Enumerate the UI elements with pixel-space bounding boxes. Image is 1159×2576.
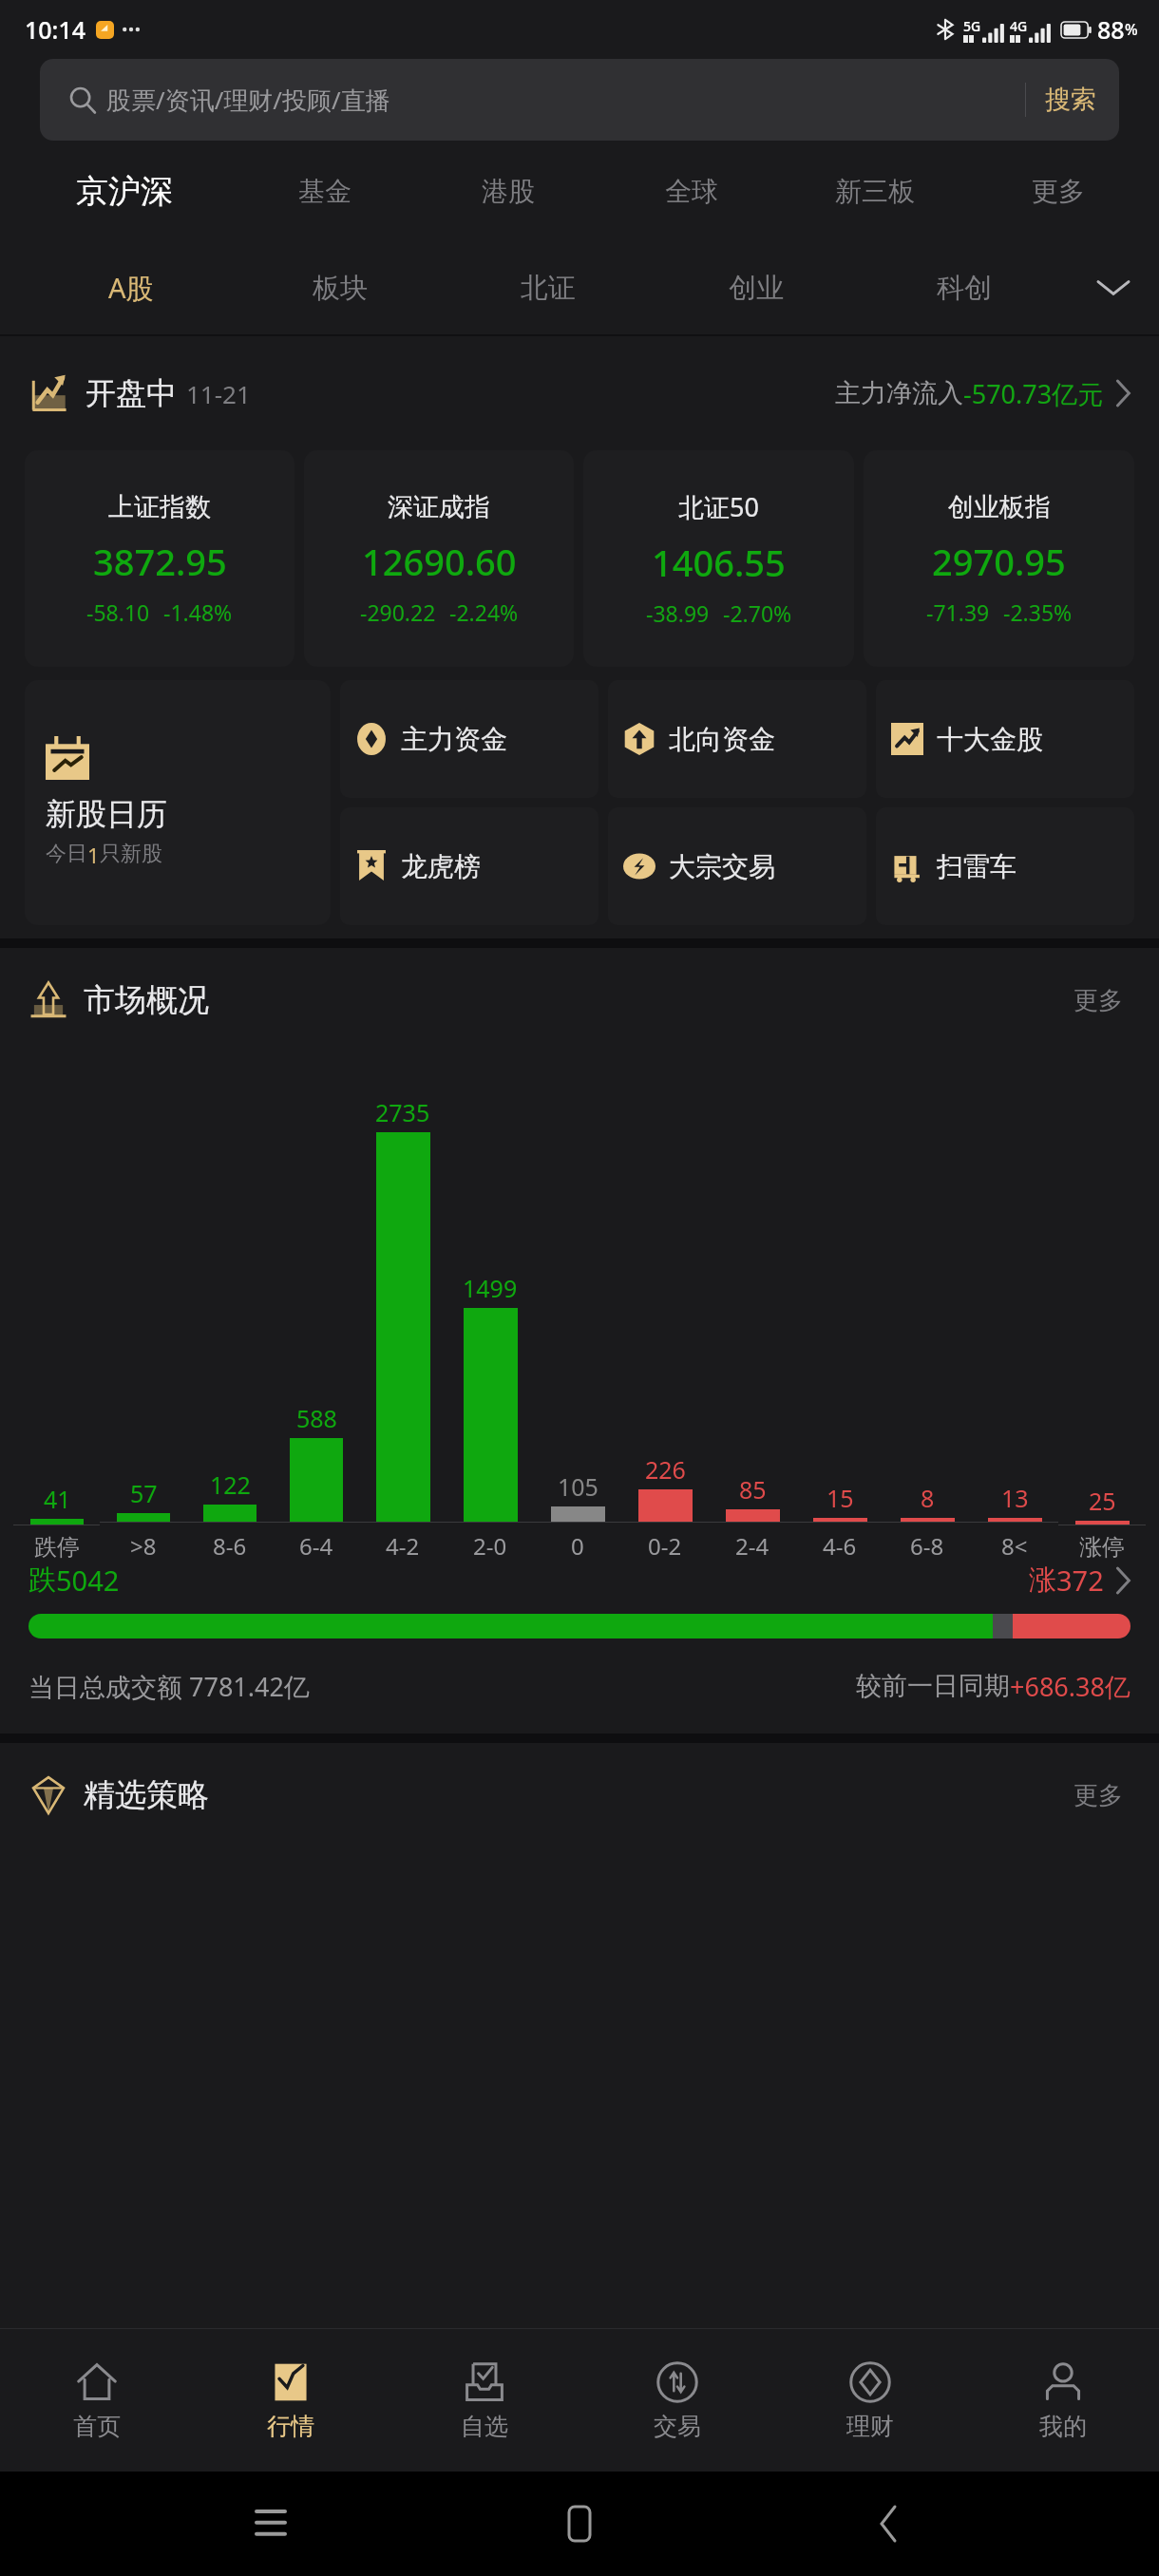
staticText: 搜索 [1045, 84, 1096, 116]
staticText: 涨 [1029, 1563, 1056, 1598]
staticText: 2-4 [735, 1530, 769, 1562]
staticText: 跌 [28, 1563, 56, 1598]
staticText: 更多 [1073, 1780, 1123, 1811]
button[interactable]: 我的 [966, 2329, 1159, 2472]
staticText: 15 [826, 1482, 854, 1514]
button[interactable]: 更多 [1066, 1772, 1130, 1819]
staticText: 创业板指 [948, 491, 1051, 523]
staticText: 41 [44, 1483, 71, 1515]
button[interactable]: A股 [27, 241, 236, 334]
staticText: 主力资金 [401, 723, 507, 756]
staticText: 深证成指 [388, 491, 490, 523]
button[interactable]: 更多 [966, 141, 1149, 241]
staticText: 上证指数 [108, 491, 211, 523]
staticText: 科创 [937, 271, 992, 306]
button[interactable]: 开盘中 [28, 336, 1130, 450]
staticText: 北证 [521, 271, 576, 306]
button[interactable]: 科创 [860, 241, 1068, 334]
staticText: 扫雷车 [937, 850, 1016, 883]
staticText: 88 [1097, 13, 1125, 46]
staticText: -58.10 [86, 597, 150, 627]
button[interactable]: 扫雷车 [876, 807, 1134, 925]
button[interactable]: 十大金股 [876, 680, 1134, 798]
staticText: 2970.95 [932, 537, 1066, 586]
staticText: 85 [739, 1473, 767, 1506]
button[interactable]: 更多 [1066, 977, 1130, 1024]
staticText: 港股 [482, 175, 535, 208]
staticText: 我的 [1039, 2412, 1087, 2441]
button[interactable]: 基金 [233, 141, 416, 241]
staticText: 更多 [1032, 175, 1085, 208]
button[interactable]: 龙虎榜 [340, 807, 598, 925]
button[interactable]: 创业 [652, 241, 860, 334]
staticText: +686.38亿 [1010, 1669, 1130, 1704]
staticText: 更多 [1073, 985, 1123, 1016]
button[interactable]: 最近任务 [233, 2486, 309, 2562]
staticText: 12690.60 [362, 537, 517, 586]
staticText: >8 [130, 1530, 157, 1562]
staticText: A股 [108, 269, 154, 307]
staticText: 0 [571, 1530, 584, 1562]
staticText: -1.48% [163, 597, 233, 627]
button[interactable]: 新三板 [783, 141, 966, 241]
staticText: 10:14 [25, 13, 86, 46]
staticText: 精选策略 [84, 1775, 209, 1815]
staticText: 588 [296, 1402, 337, 1434]
staticText: 372 [1056, 1562, 1104, 1599]
button[interactable]: 展开更多分类 [1068, 241, 1159, 334]
staticText: 较前一日同期 [856, 1670, 1010, 1702]
staticText: 北向资金 [669, 723, 775, 756]
button[interactable]: 上证指数 [25, 450, 294, 667]
staticText: 11-21 [186, 377, 251, 410]
staticText: 股票/资讯/理财/投顾/直播 [106, 83, 390, 117]
staticText: 3872.95 [93, 537, 227, 586]
button[interactable]: 新股日历 [25, 680, 331, 925]
staticText: 4-2 [386, 1530, 420, 1562]
button[interactable]: 首页 [0, 2329, 194, 2472]
button[interactable]: 北证50 [583, 450, 854, 667]
staticText: 新三板 [835, 175, 915, 208]
button[interactable]: 港股 [416, 141, 599, 241]
button[interactable]: 自选 [388, 2329, 580, 2472]
button[interactable]: 创业板指 [864, 450, 1134, 667]
staticText: -2.24% [449, 597, 519, 627]
staticText: 13 [1001, 1482, 1029, 1514]
button[interactable]: 理财 [773, 2329, 966, 2472]
staticText: 涨停 [1079, 1533, 1125, 1562]
staticText: 板块 [313, 271, 368, 306]
button[interactable]: 板块 [236, 241, 444, 334]
staticText: 0-2 [648, 1530, 682, 1562]
staticText: 1406.55 [652, 538, 786, 587]
staticText: 大宗交易 [669, 850, 775, 883]
button[interactable]: 股票/资讯/理财/投顾/直播 [40, 59, 1119, 141]
staticText: 十大金股 [937, 723, 1043, 756]
button[interactable]: 跌 [28, 1562, 1130, 1638]
button[interactable]: 京沪深 [15, 141, 233, 241]
button[interactable]: 深证成指 [304, 450, 574, 667]
staticText: 6-8 [910, 1530, 944, 1562]
staticText: 4-6 [823, 1530, 857, 1562]
button[interactable]: 返回 [850, 2486, 926, 2562]
staticText: 2-0 [473, 1530, 507, 1562]
button[interactable]: 全球 [599, 141, 783, 241]
button[interactable]: 行情 [194, 2329, 388, 2472]
staticText: -2.35% [1003, 597, 1073, 627]
button[interactable]: 主屏幕 [541, 2486, 617, 2562]
staticText: 今日 [46, 841, 87, 867]
button[interactable]: 北向资金 [608, 680, 866, 798]
staticText: 首页 [73, 2412, 121, 2441]
staticText: 全球 [665, 175, 718, 208]
staticText: -38.99 [646, 598, 710, 628]
staticText: 北证50 [678, 489, 759, 524]
staticText: -570.73亿元 [963, 376, 1104, 411]
button[interactable]: 交易 [580, 2329, 773, 2472]
staticText: 25 [1089, 1485, 1116, 1517]
staticText: 1 [87, 841, 100, 869]
staticText: 5G [963, 17, 981, 35]
staticText: 京沪深 [76, 171, 173, 212]
button[interactable]: 北证 [444, 241, 652, 334]
staticText: 开盘中 [85, 374, 177, 412]
button[interactable]: 主力资金 [340, 680, 598, 798]
staticText: 基金 [298, 175, 351, 208]
button[interactable]: 大宗交易 [608, 807, 866, 925]
